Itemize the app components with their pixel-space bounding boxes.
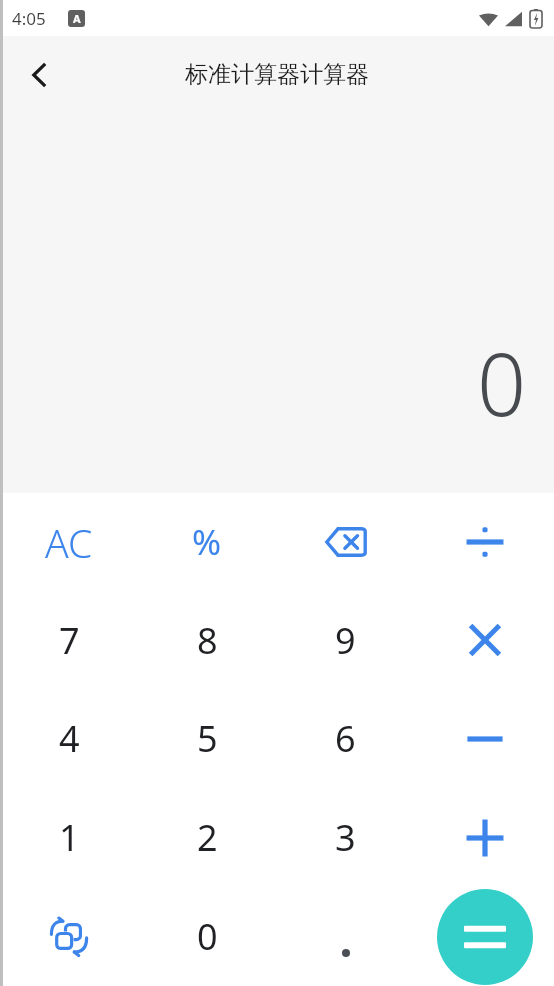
staticText: AC xyxy=(45,516,93,569)
button[interactable]: Backspace xyxy=(276,493,415,591)
staticText: 2 xyxy=(197,813,218,862)
staticText: 4 xyxy=(59,714,80,763)
staticText: A xyxy=(73,11,81,26)
button[interactable]: Convert units xyxy=(0,887,138,986)
button[interactable]: Minus xyxy=(415,689,554,788)
staticText: 标准计算器计算器 xyxy=(185,60,369,89)
button[interactable]: Multiply xyxy=(415,591,554,689)
staticText: 1 xyxy=(59,813,80,862)
button[interactable]: 2 xyxy=(138,788,276,887)
staticText: 5 xyxy=(197,714,218,763)
button[interactable]: Back xyxy=(9,44,71,106)
staticText: 0 xyxy=(477,324,527,441)
staticText: 7 xyxy=(59,616,80,665)
button[interactable]: Plus xyxy=(415,788,554,887)
button[interactable]: 0 xyxy=(138,887,276,986)
button[interactable]: 4 xyxy=(0,689,138,788)
button[interactable]: Clear all xyxy=(0,493,138,591)
button[interactable]: 8 xyxy=(138,591,276,689)
button[interactable]: 9 xyxy=(276,591,415,689)
button[interactable]: 3 xyxy=(276,788,415,887)
staticText: 6 xyxy=(335,714,356,763)
staticText: 4:05 xyxy=(12,7,46,30)
staticText: 9 xyxy=(335,616,356,665)
button[interactable]: Decimal point xyxy=(276,887,415,986)
button[interactable]: 6 xyxy=(276,689,415,788)
staticText: 3 xyxy=(335,813,356,862)
button[interactable]: Percent xyxy=(138,493,276,591)
button[interactable]: Equals xyxy=(437,889,533,985)
button[interactable]: 5 xyxy=(138,689,276,788)
staticText: % xyxy=(192,518,222,566)
button[interactable]: 1 xyxy=(0,788,138,887)
button[interactable]: 7 xyxy=(0,591,138,689)
staticText: 8 xyxy=(197,616,218,665)
button[interactable]: Divide xyxy=(415,493,554,591)
staticText: 0 xyxy=(197,912,218,961)
